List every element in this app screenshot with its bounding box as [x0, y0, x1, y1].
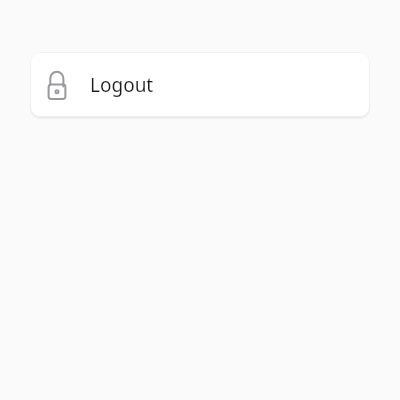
other: Logout: [45, 70, 69, 100]
staticText: Logout: [90, 72, 154, 98]
button[interactable]: Logout: [30, 52, 370, 117]
